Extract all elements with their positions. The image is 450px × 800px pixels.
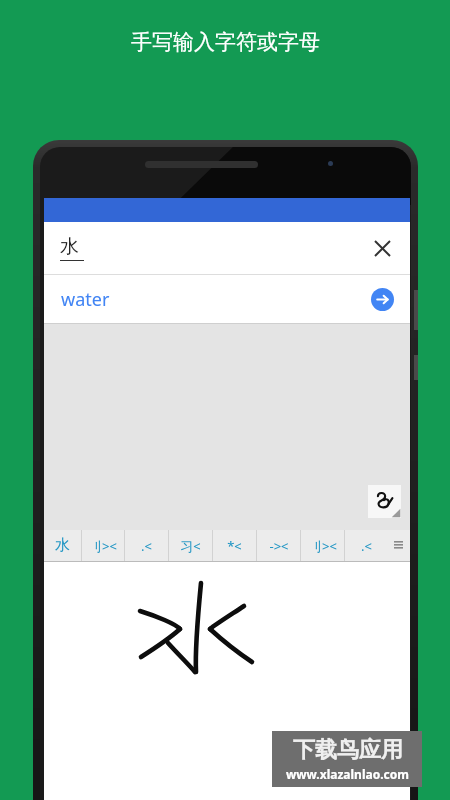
staticText: 下载鸟应用	[293, 736, 403, 764]
button[interactable]: 刂><	[82, 530, 124, 561]
button[interactable]: .<	[345, 530, 388, 561]
button[interactable]: water	[44, 275, 410, 323]
button[interactable]: 习<	[169, 530, 212, 561]
staticText: .<	[141, 537, 152, 555]
button[interactable]: *<	[213, 530, 256, 561]
staticText: 刂><	[309, 537, 337, 555]
staticText: .<	[361, 537, 372, 555]
button[interactable]: .<	[125, 530, 168, 561]
staticText: www.xlazalnlao.com	[286, 766, 409, 782]
staticText: 刂><	[89, 537, 117, 555]
button[interactable]: 刂><	[301, 530, 344, 561]
staticText: -><	[269, 537, 289, 555]
staticText: 水	[55, 536, 70, 555]
button[interactable]: 水	[44, 530, 81, 561]
staticText: water	[61, 287, 110, 312]
button[interactable]: More candidates	[388, 530, 408, 561]
button[interactable]: -><	[257, 530, 300, 561]
button[interactable]: Handwriting input	[368, 485, 401, 518]
staticText: 习<	[180, 537, 201, 555]
button[interactable]: Clear	[360, 226, 404, 270]
button[interactable]: 水	[44, 222, 410, 274]
staticText: 手写输入字符或字母	[131, 29, 320, 55]
staticText: *<	[227, 537, 242, 555]
staticText: 水	[60, 235, 79, 259]
button[interactable]: Go	[360, 277, 404, 321]
